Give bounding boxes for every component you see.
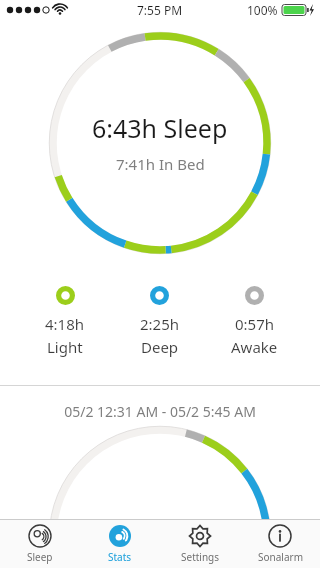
button[interactable]: 4:18h: [18, 282, 112, 361]
staticText: Settings: [181, 550, 220, 564]
staticText: 6:43h Sleep: [92, 111, 228, 145]
button[interactable]: Sleep: [0, 520, 80, 568]
button[interactable]: Stats: [80, 520, 160, 568]
staticText: 0:57h: [235, 314, 275, 334]
staticText: 7:55 PM: [137, 2, 183, 18]
staticText: Deep: [141, 337, 179, 357]
staticText: Stats: [108, 550, 132, 564]
staticText: 4:18h: [45, 314, 85, 334]
staticText: Awake: [231, 337, 278, 357]
staticText: 7:41h In Bed: [116, 154, 205, 174]
staticText: Light: [47, 337, 83, 357]
button[interactable]: 2:25h: [112, 282, 207, 361]
button[interactable]: Sonalarm: [240, 520, 320, 568]
button[interactable]: Settings: [160, 520, 240, 568]
button[interactable]: 0:57h: [207, 282, 302, 361]
staticText: Sleep: [27, 550, 53, 564]
staticText: 05/2 12:31 AM - 05/2 5:45 AM: [0, 402, 320, 421]
staticText: Sonalarm: [258, 550, 303, 564]
staticText: 100%: [247, 2, 278, 18]
staticText: 2:25h: [140, 314, 180, 334]
